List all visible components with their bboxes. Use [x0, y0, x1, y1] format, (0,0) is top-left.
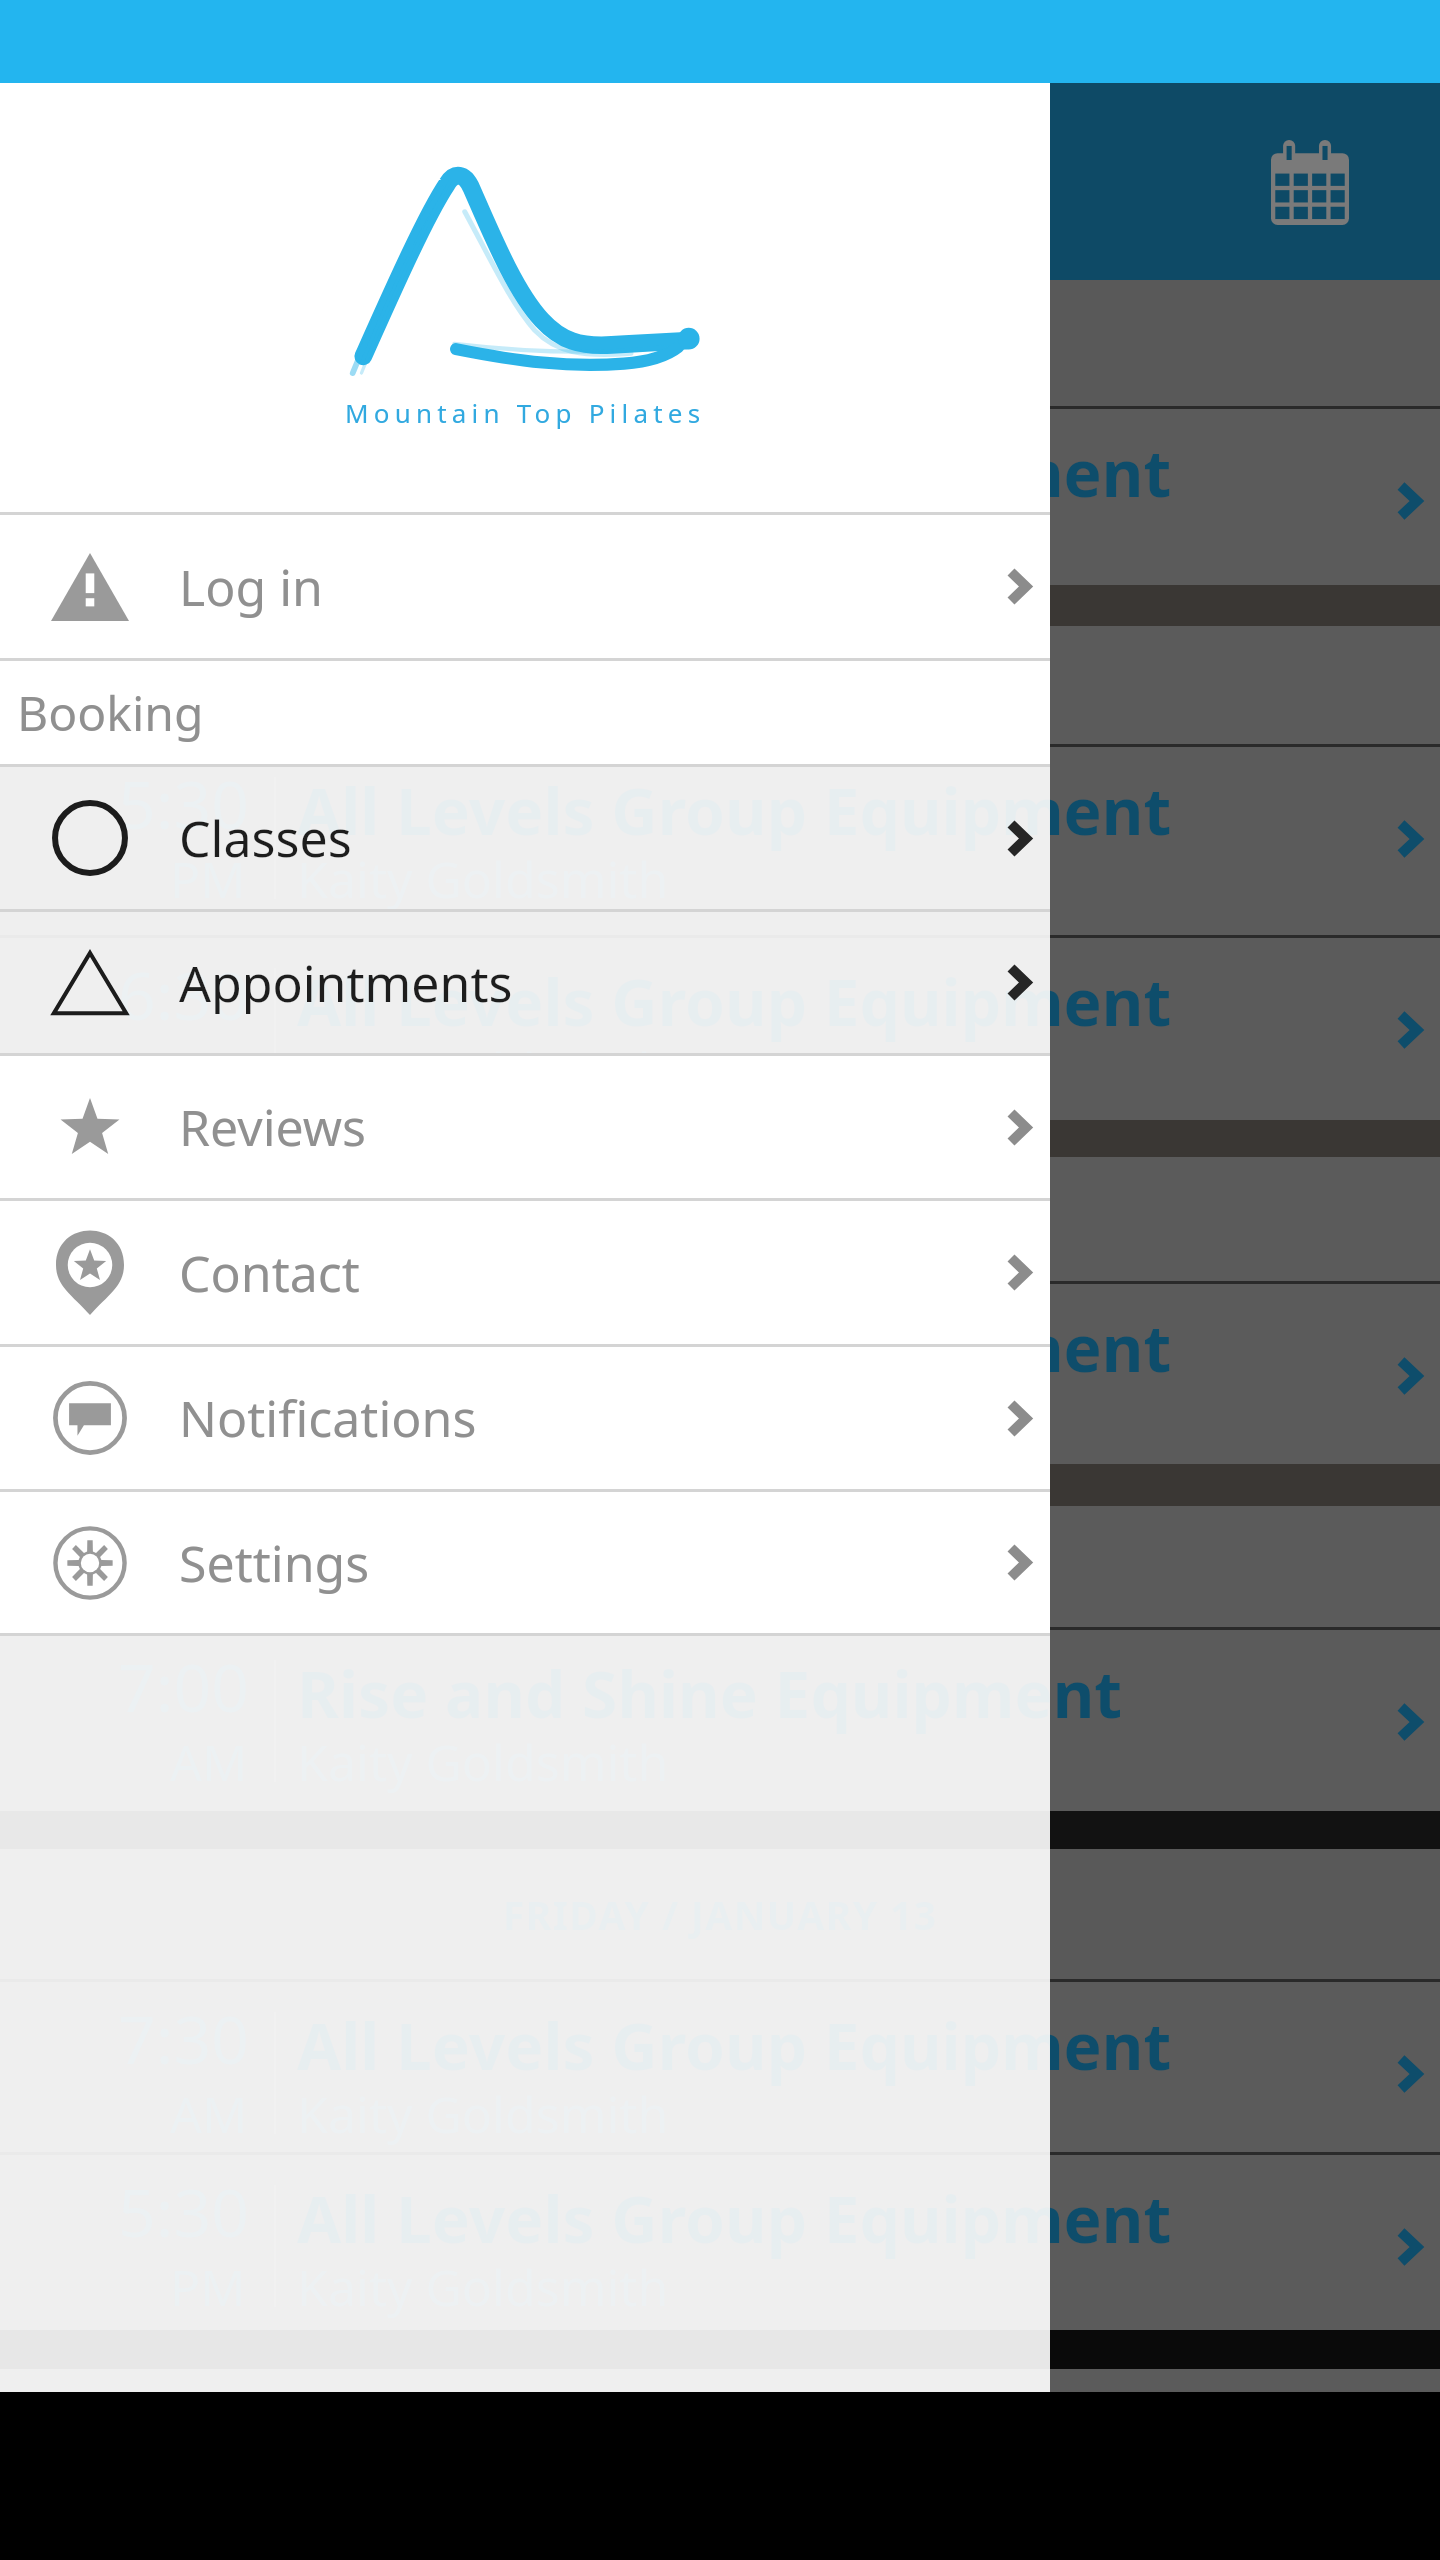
staticText: Log in — [179, 553, 323, 621]
button[interactable]: Calendar — [1245, 117, 1375, 247]
staticText: All Levels Group Equipment — [297, 429, 1172, 516]
staticText: Kaity Goldsmith — [297, 1036, 669, 1104]
button[interactable]: Reviews — [0, 1056, 1050, 1198]
staticText: Contact — [179, 1239, 360, 1307]
staticText: Appointments — [179, 949, 513, 1017]
staticText: 5:30 — [118, 758, 249, 848]
button[interactable]: Log in — [0, 515, 1050, 658]
staticText: All Levels Group Equipment — [297, 1304, 1172, 1391]
staticText: 6:30 — [118, 949, 249, 1039]
staticText: Booking — [17, 680, 204, 745]
button[interactable]: Classes — [0, 767, 1050, 909]
staticText: Notifications — [179, 1384, 477, 1452]
button[interactable]: Notifications — [0, 1347, 1050, 1489]
button[interactable]: Appointments — [0, 912, 1050, 1053]
staticText: Classes — [179, 804, 352, 872]
button[interactable]: Contact — [0, 1201, 1050, 1344]
staticText: All Levels Group Equipment — [297, 2175, 1172, 2262]
staticText: Settings — [179, 1529, 370, 1597]
staticText: PM — [170, 845, 246, 913]
button[interactable]: 4:30 — [0, 409, 1440, 585]
staticText: Kaity Goldsmith — [297, 1382, 669, 1450]
staticText: PM — [170, 1382, 246, 1450]
button[interactable]: 6:30 — [0, 938, 1440, 1120]
staticText: 6:00 — [118, 1295, 249, 1385]
button[interactable]: 5:30 — [0, 747, 1440, 935]
staticText: All Levels Group Equipment — [297, 2002, 1172, 2089]
button[interactable]: 7:30 — [0, 1982, 1440, 2152]
button[interactable]: 6:00 — [0, 1284, 1440, 1464]
staticText: THURSDAY / JANUARY 12 — [468, 317, 973, 370]
staticText: PM — [170, 507, 246, 575]
staticText: Rise and Shine Equipment — [297, 1650, 1123, 1737]
staticText: Kaity Goldsmith — [297, 507, 669, 575]
staticText: PM — [170, 1036, 246, 1104]
button[interactable]: 5:30 — [0, 2155, 1440, 2330]
staticText: All Levels Group Equipment — [297, 767, 1172, 854]
staticText: Kaity Goldsmith — [297, 845, 669, 913]
button[interactable]: 7:00 — [0, 1630, 1440, 1811]
button[interactable]: Settings — [0, 1492, 1050, 1633]
staticText: Reviews — [179, 1093, 367, 1161]
staticText: Mountain Top Pilates — [345, 395, 706, 430]
staticText: All Levels Group Equipment — [297, 958, 1172, 1045]
